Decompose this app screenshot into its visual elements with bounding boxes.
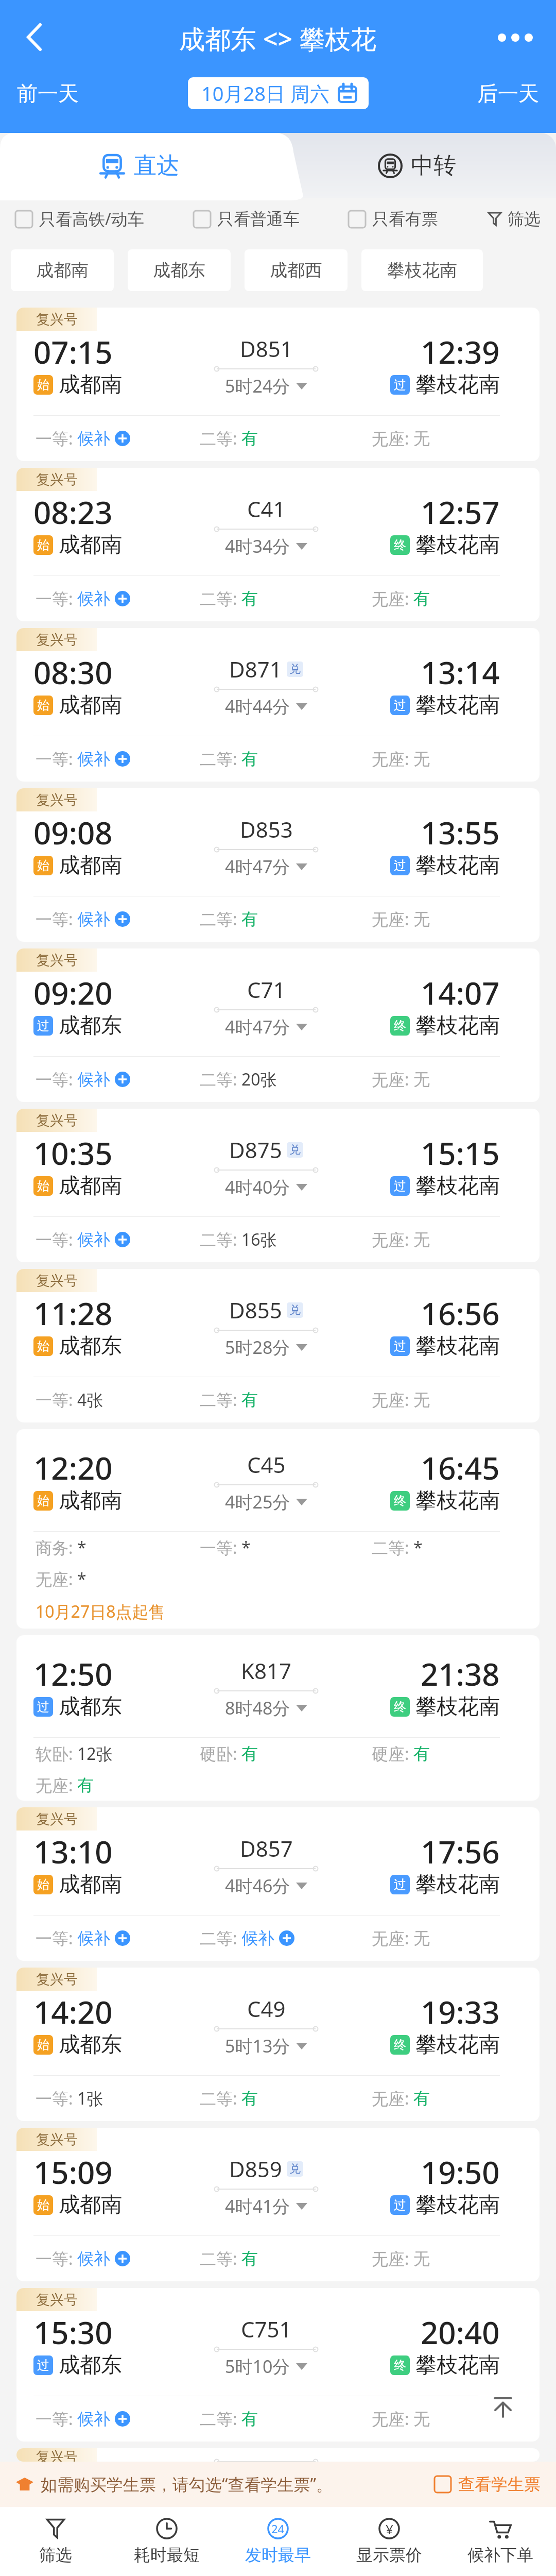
staticText: 过 bbox=[394, 698, 406, 713]
button[interactable]: 中转 bbox=[278, 133, 556, 198]
staticText: 复兴号 bbox=[36, 471, 78, 488]
staticText: 攀枝花南 bbox=[415, 1173, 500, 1199]
staticText: 攀枝花南 bbox=[415, 692, 500, 719]
button[interactable]: 成都东 bbox=[128, 249, 231, 291]
button[interactable]: 查看学生票 bbox=[435, 2474, 541, 2495]
staticText: 有 bbox=[241, 1389, 258, 1410]
staticText: 二等: bbox=[200, 908, 241, 930]
staticText: D853 bbox=[240, 815, 293, 844]
button[interactable]: 复兴号 bbox=[16, 2448, 540, 2462]
button[interactable]: Back bbox=[0, 0, 67, 72]
staticText: 有 bbox=[241, 2409, 258, 2429]
staticText: 商务: bbox=[36, 1536, 77, 1559]
staticText: 兑 bbox=[289, 662, 301, 676]
button[interactable]: 复兴号 bbox=[16, 308, 540, 461]
button[interactable]: 复兴号 bbox=[16, 468, 540, 621]
staticText: 候补 bbox=[77, 588, 110, 609]
staticText: 复兴号 bbox=[36, 311, 78, 328]
button[interactable]: 攀枝花南 bbox=[361, 249, 483, 291]
button[interactable]: 12:20 bbox=[16, 1429, 540, 1629]
button[interactable]: 复兴号 bbox=[16, 1968, 540, 2121]
staticText: 无座: bbox=[372, 427, 413, 450]
staticText: 有 bbox=[241, 588, 258, 609]
staticText: 10月27日8点起售 bbox=[36, 1600, 165, 1623]
staticText: 12张 bbox=[77, 1742, 113, 1765]
button[interactable]: 只看有票 bbox=[349, 209, 438, 229]
button[interactable]: 复兴号 bbox=[16, 1269, 540, 1422]
staticText: 成都南 bbox=[59, 2192, 122, 2218]
staticText: 4时25分 bbox=[225, 1490, 290, 1514]
staticText: 过 bbox=[394, 1877, 406, 1892]
button[interactable]: 候补下单 bbox=[445, 2507, 556, 2576]
staticText: 一等: bbox=[36, 1228, 77, 1251]
staticText: 17:56 bbox=[421, 1831, 500, 1870]
staticText: 15:30 bbox=[33, 2311, 113, 2350]
staticText: 只看高铁/动车 bbox=[39, 208, 144, 230]
staticText: 无座: bbox=[372, 1927, 413, 1950]
staticText: 无座: bbox=[372, 2247, 413, 2270]
staticText: 一等: bbox=[36, 2247, 77, 2270]
staticText: 过 bbox=[37, 2358, 49, 2373]
button[interactable]: 只看高铁/动车 bbox=[15, 208, 144, 230]
button[interactable]: 24 bbox=[222, 2507, 334, 2576]
staticText: 显示票价 bbox=[356, 2545, 422, 2565]
button[interactable]: 复兴号 bbox=[16, 1109, 540, 1262]
staticText: 成都东 bbox=[59, 1693, 122, 1720]
button[interactable]: 复兴号 bbox=[16, 628, 540, 782]
staticText: 始 bbox=[37, 698, 49, 713]
staticText: 无 bbox=[413, 749, 430, 769]
button[interactable]: ¥ bbox=[334, 2507, 445, 2576]
staticText: 过 bbox=[394, 1178, 406, 1194]
staticText: 12:39 bbox=[421, 331, 500, 370]
button[interactable]: 耗时最短 bbox=[111, 2507, 222, 2576]
button[interactable]: 复兴号 bbox=[16, 2288, 540, 2442]
staticText: 成都南 bbox=[59, 1173, 122, 1199]
staticText: 12:50 bbox=[33, 1653, 113, 1692]
staticText: 4张 bbox=[77, 1388, 103, 1411]
staticText: 一等: bbox=[36, 908, 77, 930]
staticText: 19:33 bbox=[421, 1991, 500, 2030]
staticText: 一等: bbox=[200, 1536, 241, 1559]
staticText: 有 bbox=[241, 428, 258, 449]
staticText: 发时最早 bbox=[245, 2545, 311, 2565]
staticText: K817 bbox=[241, 1656, 292, 1685]
staticText: 复兴号 bbox=[36, 2291, 78, 2309]
button[interactable]: 成都南 bbox=[11, 249, 114, 291]
staticText: * bbox=[77, 1536, 86, 1559]
staticText: 终 bbox=[394, 537, 406, 553]
button[interactable]: 筛选 bbox=[0, 2507, 111, 2576]
staticText: 二等: bbox=[200, 748, 241, 770]
button[interactable]: 复兴号 bbox=[16, 1807, 540, 1961]
button[interactable]: More options bbox=[489, 0, 556, 72]
staticText: 成都东 bbox=[59, 1333, 122, 1360]
staticText: 二等: bbox=[200, 1927, 241, 1950]
button[interactable]: Scroll to top bbox=[476, 2379, 530, 2433]
staticText: 12:57 bbox=[421, 491, 500, 530]
button[interactable]: 复兴号 bbox=[16, 948, 540, 1102]
staticText: 08:23 bbox=[33, 491, 113, 530]
staticText: 二等: bbox=[200, 1228, 241, 1251]
button[interactable]: 复兴号 bbox=[16, 788, 540, 942]
staticText: 只看普通车 bbox=[217, 209, 300, 229]
button[interactable]: 筛选 bbox=[487, 209, 541, 229]
staticText: D859 bbox=[229, 2154, 282, 2183]
staticText: 无 bbox=[413, 2409, 430, 2429]
staticText: 复兴号 bbox=[36, 2448, 78, 2462]
button[interactable]: 复兴号 bbox=[16, 2128, 540, 2281]
button[interactable]: 前一天 bbox=[0, 75, 154, 112]
staticText: 20张 bbox=[241, 1068, 277, 1091]
button[interactable]: 成都西 bbox=[245, 249, 347, 291]
staticText: 复兴号 bbox=[36, 2131, 78, 2148]
button[interactable]: 后一天 bbox=[402, 75, 556, 112]
button[interactable]: 10月28日 周六 bbox=[188, 77, 369, 109]
staticText: 攀枝花南 bbox=[415, 2352, 500, 2379]
staticText: 13:10 bbox=[33, 1831, 113, 1870]
staticText: 无座: bbox=[372, 2087, 413, 2110]
staticText: 1张 bbox=[77, 2087, 103, 2110]
button[interactable]: 12:50 bbox=[16, 1635, 540, 1801]
staticText: 攀枝花南 bbox=[415, 2192, 500, 2218]
staticText: 成都南 bbox=[59, 852, 122, 879]
staticText: 一等: bbox=[36, 2408, 77, 2430]
button[interactable]: 直达 bbox=[0, 133, 278, 198]
button[interactable]: 只看普通车 bbox=[194, 209, 300, 229]
